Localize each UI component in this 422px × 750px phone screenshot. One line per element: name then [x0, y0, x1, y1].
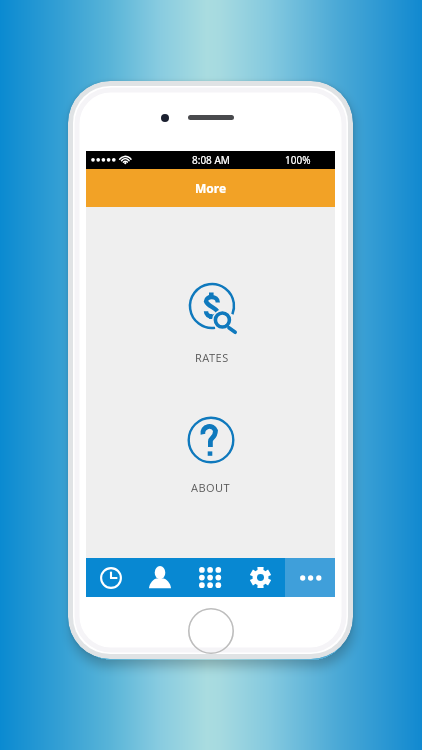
button[interactable]: More: [285, 558, 335, 597]
button[interactable]: Settings: [235, 558, 285, 597]
staticText: 8:08 AM: [192, 153, 230, 167]
button[interactable]: RATES: [172, 275, 252, 367]
button[interactable]: Keypad: [185, 558, 235, 597]
button[interactable]: Contacts: [135, 558, 185, 597]
staticText: RATES: [195, 350, 229, 365]
button[interactable]: ABOUT: [171, 409, 251, 497]
staticText: ABOUT: [191, 480, 231, 495]
staticText: More: [195, 180, 227, 196]
staticText: 100%: [285, 153, 311, 167]
button[interactable]: Recents: [86, 558, 135, 597]
